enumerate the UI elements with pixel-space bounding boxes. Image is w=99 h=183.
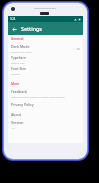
staticText: More	[11, 82, 20, 86]
staticText: Feedback	[11, 89, 27, 94]
staticText: Font Size	[11, 66, 26, 71]
staticText: Settings	[21, 25, 42, 32]
staticText: Enable Dark Mode	[11, 50, 32, 53]
staticText: 1.0	[11, 126, 15, 129]
staticText: Report technical issues or suggest new f…	[11, 95, 65, 98]
staticText: Medium	[11, 72, 21, 75]
button[interactable]: Back	[9, 24, 19, 34]
staticText: Roboto Slab	[11, 61, 25, 64]
button[interactable]: Version	[8, 119, 83, 130]
button[interactable]: Dark Mode	[8, 43, 83, 54]
button[interactable]: Toggle dark mode	[73, 46, 80, 51]
button[interactable]: Font Size	[8, 65, 83, 76]
button[interactable]: Feedback	[8, 88, 83, 99]
staticText: Dark Mode	[11, 44, 30, 49]
staticText: Typeface	[11, 55, 26, 60]
staticText: Privacy Policy	[11, 102, 34, 107]
staticText: General	[11, 37, 24, 41]
button[interactable]: About	[8, 109, 83, 119]
button[interactable]: Typeface	[8, 54, 83, 65]
staticText: Version	[11, 120, 24, 125]
staticText: About	[11, 112, 22, 117]
button[interactable]: Privacy Policy	[8, 99, 83, 109]
staticText: 5:24	[10, 17, 16, 21]
